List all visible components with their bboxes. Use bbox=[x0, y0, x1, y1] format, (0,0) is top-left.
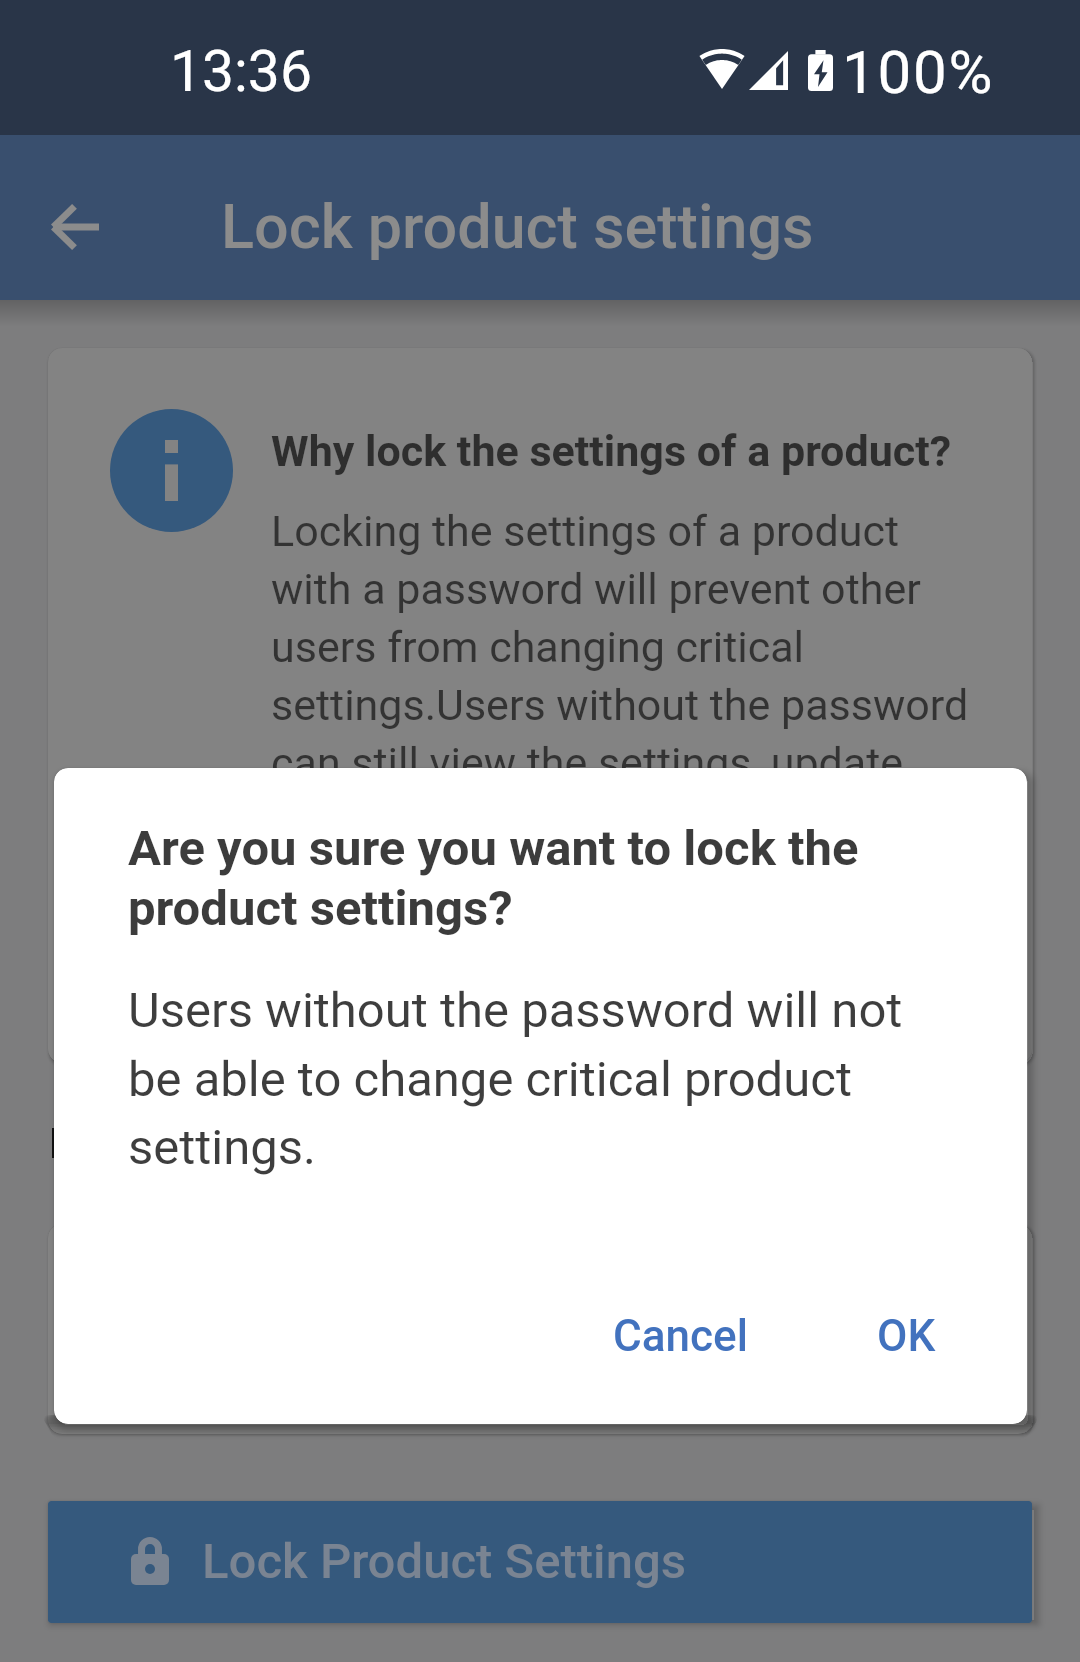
button[interactable]: Lock Product Settings bbox=[48, 1501, 1032, 1623]
staticText: Are you sure you want to lock the produc… bbox=[128, 820, 938, 937]
staticText: 100% bbox=[842, 37, 995, 107]
staticText: Why lock the settings of a product? bbox=[271, 426, 952, 476]
staticText: Users without the password will not be a… bbox=[128, 982, 943, 1176]
staticText: Lock product settings bbox=[221, 191, 814, 262]
button[interactable]: Navigate up bbox=[14, 158, 134, 278]
staticText: Lock Product Settings bbox=[202, 1533, 686, 1590]
button[interactable]: OK bbox=[853, 1292, 960, 1380]
staticText: Locking the settings of a product with a… bbox=[271, 506, 971, 904]
button[interactable]: Cancel bbox=[589, 1292, 772, 1380]
staticText: 13:36 bbox=[170, 38, 312, 105]
staticText: OK bbox=[877, 1310, 936, 1362]
staticText: Cancel bbox=[613, 1310, 748, 1362]
